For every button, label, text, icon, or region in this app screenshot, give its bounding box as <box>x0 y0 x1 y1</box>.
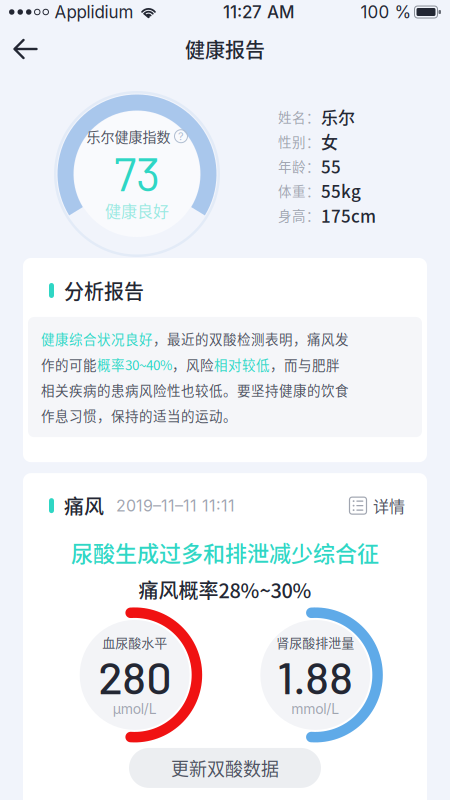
staticText: 2019–11–11 11:11 <box>116 496 235 515</box>
staticText: 健康报告 <box>185 34 265 63</box>
staticText: 痛风 <box>64 491 104 520</box>
staticText: ，而与肥胖 <box>270 354 340 374</box>
staticText: 年龄： <box>278 156 320 176</box>
staticText: 280 <box>98 649 171 703</box>
button[interactable]: Back <box>0 30 50 68</box>
button[interactable]: 详情 <box>349 494 405 517</box>
staticText: ? <box>178 130 184 143</box>
staticText: 性别： <box>278 132 320 151</box>
staticText: 55 <box>321 154 341 178</box>
staticText: 55kg <box>321 178 361 203</box>
staticText: 相关疾病的患病风险性也较低。要坚持健康的饮食 <box>41 380 349 400</box>
staticText: 概率30~40% <box>97 354 172 374</box>
staticText: 乐尔健康指数 <box>86 126 170 146</box>
staticText: 分析报告 <box>64 276 144 305</box>
staticText: 姓名： <box>278 107 320 126</box>
staticText: 作息习惯，保持的适当的运动。 <box>41 406 237 425</box>
staticText: 健康良好 <box>105 199 169 222</box>
staticText: 更新双酸数据 <box>171 755 279 781</box>
staticText: 痛风概率28%~30% <box>138 575 311 604</box>
staticText: 73 <box>114 144 160 201</box>
staticText: 1.88 <box>277 649 353 703</box>
staticText: 作的可能 <box>41 354 97 374</box>
staticText: 11:27 AM <box>223 2 295 22</box>
staticText: 100 % <box>360 2 411 22</box>
staticText: mmol/L <box>291 700 339 717</box>
staticText: 血尿酸水平 <box>102 632 167 651</box>
staticText: 身高： <box>278 205 320 225</box>
staticText: 尿酸生成过多和排泄减少综合征 <box>71 536 379 568</box>
staticText: 肾尿酸排泄量 <box>276 632 354 651</box>
staticText: 体重： <box>278 181 320 200</box>
staticText: 相对较低 <box>214 354 270 374</box>
staticText: Applidium <box>54 2 133 22</box>
staticText: 175cm <box>321 203 376 227</box>
staticText: ，风险 <box>172 354 214 374</box>
staticText: 女 <box>321 129 338 154</box>
staticText: ，最近的双酸检测表明，痛风发 <box>153 329 349 348</box>
button[interactable]: 更新双酸数据 <box>129 748 321 788</box>
staticText: 详情 <box>373 494 405 517</box>
staticText: μmol/L <box>113 700 157 717</box>
staticText: 健康综合状况良好 <box>41 329 153 348</box>
staticText: 乐尔 <box>321 104 355 129</box>
